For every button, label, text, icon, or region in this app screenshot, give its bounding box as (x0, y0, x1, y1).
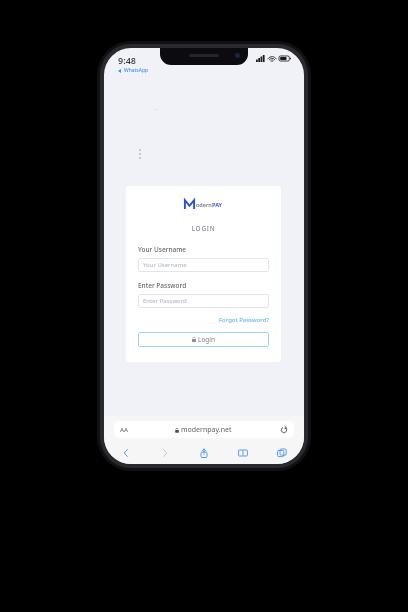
button[interactable]: Tabs (273, 444, 291, 461)
button[interactable]: Forward (156, 444, 174, 461)
staticText: Enter Password (143, 297, 187, 305)
button[interactable]: Your Username (138, 258, 269, 272)
staticText: PAY (212, 201, 223, 208)
button[interactable]: Login (138, 332, 269, 347)
button[interactable]: Forgot Password? (138, 315, 269, 325)
staticText: Your Username (143, 261, 187, 269)
button[interactable]: Enter Password (138, 294, 269, 308)
button[interactable]: Reload (279, 425, 288, 434)
button[interactable]: AA (114, 421, 294, 438)
staticText: Forgot Password? (219, 316, 269, 324)
staticText: odern (196, 201, 212, 208)
staticText: WhatsApp (124, 67, 149, 74)
staticText: Your Username (138, 245, 187, 254)
staticText: AA (120, 426, 128, 434)
staticText: LOGIN (138, 224, 269, 233)
button[interactable]: Bookmarks (234, 444, 252, 461)
button[interactable]: Back (117, 444, 135, 461)
staticText: Enter Password (138, 281, 187, 290)
staticText: Login (198, 335, 216, 344)
staticText: 9:48 (118, 54, 136, 66)
button[interactable]: Share (195, 444, 213, 461)
staticText: ··· (154, 107, 158, 112)
staticText: modernpay.net (181, 425, 232, 435)
